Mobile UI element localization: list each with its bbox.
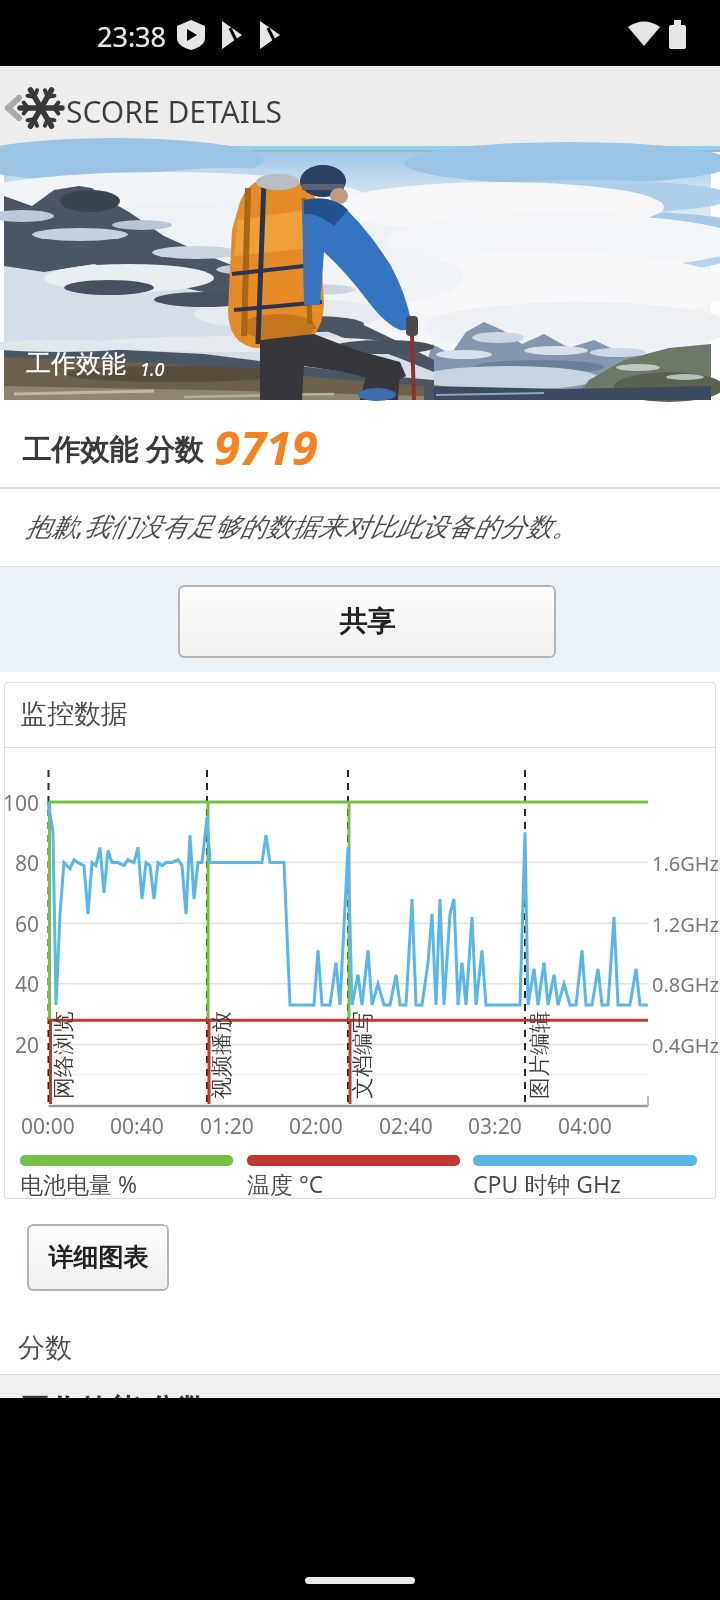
staticText: 工作效能: [26, 348, 126, 379]
staticText: 23:38: [97, 18, 167, 55]
staticText: 01:20: [200, 1112, 254, 1141]
staticText: 分数: [18, 1331, 72, 1365]
staticText: 0.8GHz: [652, 971, 720, 998]
staticText: 40: [15, 970, 40, 999]
staticText: 0.4GHz: [652, 1032, 720, 1059]
staticText: 9719: [214, 415, 318, 479]
staticText: 1.2GHz: [652, 911, 720, 938]
staticText: 02:00: [289, 1112, 343, 1141]
staticText: 04:00: [558, 1112, 612, 1141]
staticText: 工作效能 分数: [20, 1388, 208, 1398]
staticText: 00:40: [110, 1112, 164, 1141]
staticText: 文档编写: [349, 1011, 377, 1099]
staticText: 图片编辑: [526, 1011, 554, 1099]
button[interactable]: [305, 1577, 415, 1584]
staticText: 00:00: [21, 1112, 75, 1141]
staticText: 视频播放: [208, 1011, 236, 1099]
staticText: 80: [15, 849, 40, 878]
staticText: SCORE DETAILS: [66, 91, 283, 132]
staticText: 60: [15, 910, 40, 939]
staticText: 网络浏览: [50, 1011, 78, 1099]
button[interactable]: 共享: [178, 585, 556, 658]
staticText: CPU 时钟 GHz: [473, 1168, 621, 1199]
staticText: 100: [3, 789, 40, 818]
staticText: 1.6GHz: [652, 850, 720, 877]
button[interactable]: [0, 66, 64, 146]
staticText: 02:40: [379, 1112, 433, 1141]
staticText: 共享: [339, 604, 395, 639]
staticText: 电池电量 %: [20, 1168, 138, 1199]
staticText: 工作效能 分数: [22, 429, 204, 469]
staticText: 温度 °C: [247, 1168, 324, 1199]
staticText: 抱歉,我们没有足够的数据来对比此设备的分数。: [25, 508, 578, 544]
staticText: 监控数据: [20, 697, 128, 731]
staticText: 03:20: [468, 1112, 522, 1141]
staticText: 1.0: [140, 357, 165, 382]
button[interactable]: 详细图表: [27, 1224, 169, 1291]
staticText: 详细图表: [48, 1242, 148, 1273]
staticText: 20: [15, 1031, 40, 1060]
